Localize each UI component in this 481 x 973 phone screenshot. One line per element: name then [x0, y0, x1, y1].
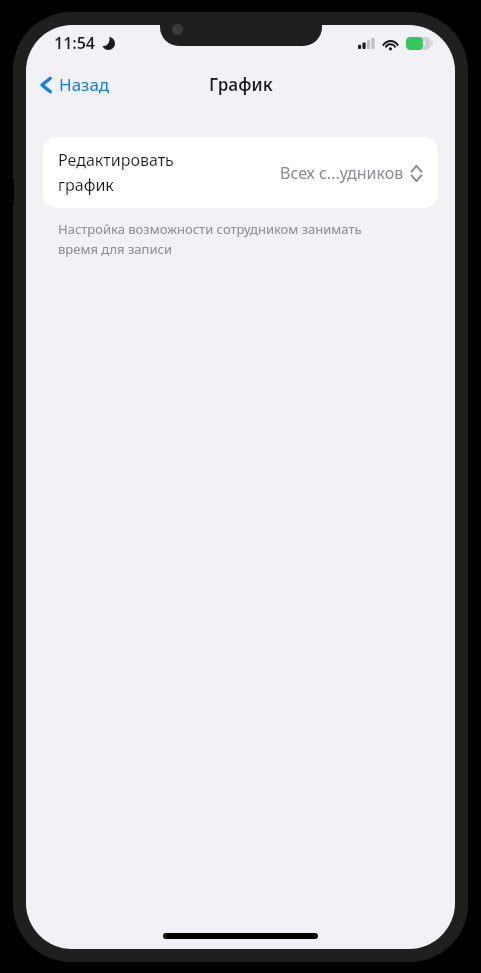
staticText: Настройка возможности сотрудником занима…: [58, 220, 362, 238]
staticText: Редактировать: [58, 149, 174, 171]
button[interactable]: Редактировать: [43, 137, 438, 208]
staticText: Назад: [59, 73, 110, 96]
staticText: график: [58, 174, 114, 196]
staticText: График: [209, 73, 273, 96]
other: Выбрать значение: [410, 164, 423, 183]
button[interactable]: Назад: [34, 69, 120, 100]
staticText: Всех с...удников: [280, 162, 404, 184]
staticText: время для записи: [58, 240, 172, 258]
staticText: 11:54: [54, 32, 96, 54]
